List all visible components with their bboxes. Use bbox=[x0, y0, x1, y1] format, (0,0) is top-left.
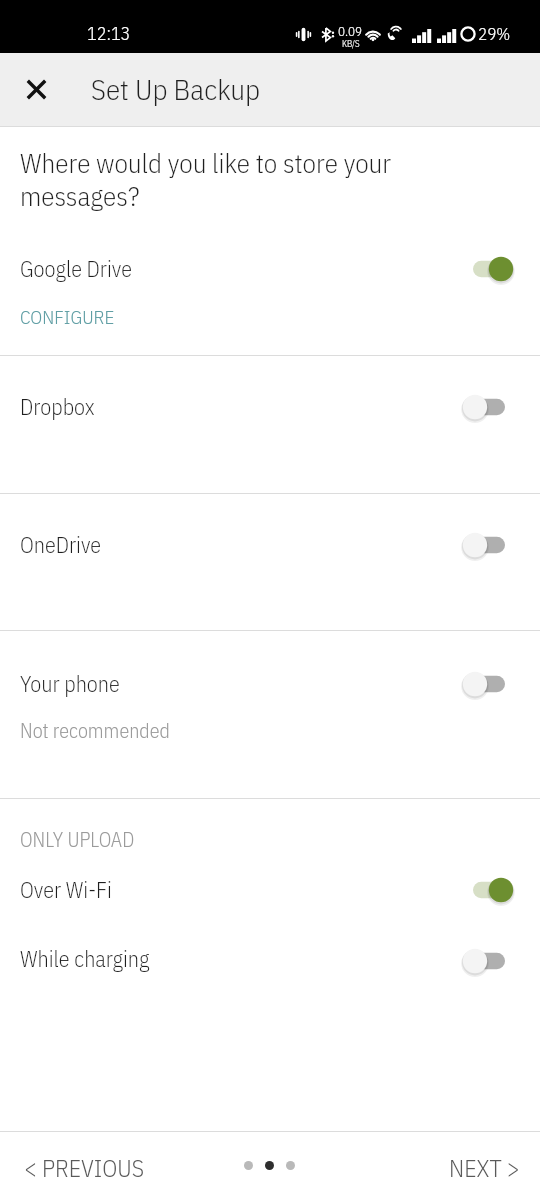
staticText: Dropbox bbox=[20, 392, 95, 421]
button[interactable]: Dropbox bbox=[0, 356, 540, 493]
button[interactable]: < PREVIOUS bbox=[6, 1140, 163, 1195]
button[interactable]: Dropbox, off bbox=[449, 383, 529, 431]
staticText: ONLY UPLOAD bbox=[20, 826, 135, 852]
staticText: 0.09 bbox=[338, 23, 363, 40]
staticText: Your phone bbox=[20, 669, 120, 698]
staticText: Google Drive bbox=[20, 254, 132, 283]
button[interactable]: OneDrive bbox=[0, 494, 540, 630]
staticText: CONFIGURE bbox=[20, 305, 115, 330]
staticText: Where would you like to store your messa… bbox=[20, 145, 420, 213]
button[interactable]: OneDrive, off bbox=[449, 521, 529, 569]
button[interactable]: Your phone bbox=[0, 631, 540, 798]
button[interactable]: Google Drive bbox=[0, 242, 540, 298]
staticText: KB/S bbox=[342, 38, 360, 50]
staticText: Set Up Backup bbox=[91, 70, 261, 108]
button[interactable]: Over Wi-Fi bbox=[0, 866, 540, 918]
button[interactable]: While charging bbox=[0, 935, 540, 987]
staticText: Over Wi-Fi bbox=[20, 875, 112, 904]
button[interactable]: Your phone, off bbox=[449, 660, 529, 708]
staticText: NEXT > bbox=[449, 1152, 520, 1183]
staticText: While charging bbox=[20, 944, 150, 973]
staticText: OneDrive bbox=[20, 530, 102, 559]
staticText: Not recommended bbox=[20, 717, 170, 743]
staticText: 12:13 bbox=[87, 22, 131, 45]
button[interactable]: Close bbox=[12, 65, 60, 113]
button[interactable]: Over Wi-Fi, on bbox=[449, 866, 529, 914]
staticText: < PREVIOUS bbox=[24, 1152, 145, 1183]
staticText: 29% bbox=[478, 23, 511, 45]
button[interactable]: While charging, off bbox=[449, 937, 529, 985]
button[interactable]: CONFIGURE bbox=[14, 299, 121, 336]
button[interactable]: NEXT > bbox=[431, 1140, 538, 1195]
button[interactable]: Google Drive, on bbox=[449, 245, 529, 293]
